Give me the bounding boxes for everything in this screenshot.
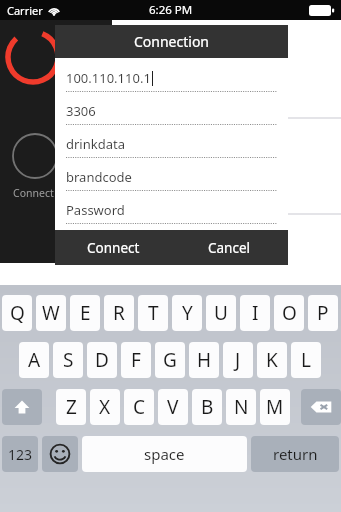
staticText: X — [99, 394, 111, 420]
staticText: Q — [10, 300, 25, 326]
staticText: H — [197, 347, 212, 373]
button[interactable]: B — [192, 389, 222, 425]
staticText: drinkdata — [66, 135, 125, 153]
staticText: VARIABLES INFORMATION — [144, 249, 279, 264]
button[interactable]: G — [155, 342, 185, 378]
button[interactable]: O — [274, 295, 304, 331]
button[interactable]: S — [53, 342, 83, 378]
staticText: Z — [66, 394, 77, 420]
staticText: S — [63, 347, 74, 373]
staticText: Password — [66, 201, 125, 219]
button[interactable]: T — [138, 295, 168, 331]
button[interactable]: L — [291, 342, 321, 378]
staticText: V — [167, 394, 179, 420]
staticText: 6:26 PM — [149, 2, 193, 18]
button[interactable]: Shift — [2, 389, 42, 425]
button[interactable]: J — [223, 342, 253, 378]
staticText: O — [282, 300, 297, 326]
staticText: J — [235, 347, 241, 373]
staticText: M — [266, 394, 284, 420]
staticText: 123 — [8, 445, 33, 464]
staticText: E — [80, 300, 91, 326]
button[interactable]: F — [121, 342, 151, 378]
staticText: R — [113, 300, 125, 326]
staticText: A — [28, 347, 41, 373]
button[interactable]: return — [251, 436, 339, 472]
staticText: G — [163, 347, 177, 373]
staticText: K — [266, 347, 278, 373]
button[interactable]: W — [36, 295, 66, 331]
staticText: I — [252, 300, 259, 326]
button[interactable]: I — [240, 295, 270, 331]
button[interactable]: Emoji — [42, 436, 78, 472]
button[interactable]: Z — [56, 389, 86, 425]
button[interactable]: X — [90, 389, 120, 425]
staticText: W — [42, 300, 60, 326]
button[interactable]: A — [19, 342, 49, 378]
button[interactable]: N — [226, 389, 256, 425]
button[interactable]: Q — [2, 295, 32, 331]
button[interactable]: Cancel — [171, 230, 288, 265]
button[interactable]: Backspace — [301, 389, 341, 425]
staticText: space — [144, 444, 185, 464]
staticText: Cancel — [208, 239, 251, 257]
button[interactable]: E — [70, 295, 100, 331]
staticText: 100.110.110.1 — [66, 69, 151, 87]
button[interactable]: Connect — [55, 230, 171, 265]
button[interactable]: R — [104, 295, 134, 331]
button[interactable]: 123 — [2, 436, 38, 472]
staticText: Connection — [134, 32, 210, 51]
staticText: Connect — [87, 239, 140, 257]
staticText: brandcode — [66, 168, 132, 186]
staticText: Carrier — [7, 3, 43, 18]
staticText: 3306 — [66, 102, 96, 120]
button[interactable]: H — [189, 342, 219, 378]
staticText: F — [131, 347, 141, 373]
button[interactable]: P — [308, 295, 338, 331]
staticText: B — [201, 394, 214, 420]
staticText: D — [95, 347, 109, 373]
button[interactable]: space — [82, 436, 247, 472]
button[interactable]: C — [124, 389, 154, 425]
staticText: N — [234, 394, 249, 420]
staticText: C — [133, 394, 146, 420]
staticText: Connect — [13, 186, 54, 200]
button[interactable]: V — [158, 389, 188, 425]
staticText: Y — [182, 300, 193, 326]
staticText: L — [301, 347, 311, 373]
button[interactable]: U — [206, 295, 236, 331]
button[interactable]: D — [87, 342, 117, 378]
button[interactable]: M — [260, 389, 290, 425]
button[interactable]: Y — [172, 295, 202, 331]
staticText: P — [317, 300, 329, 326]
staticText: U — [214, 300, 228, 326]
staticText: T — [148, 300, 159, 326]
staticText: return — [273, 444, 318, 464]
button[interactable]: K — [257, 342, 287, 378]
